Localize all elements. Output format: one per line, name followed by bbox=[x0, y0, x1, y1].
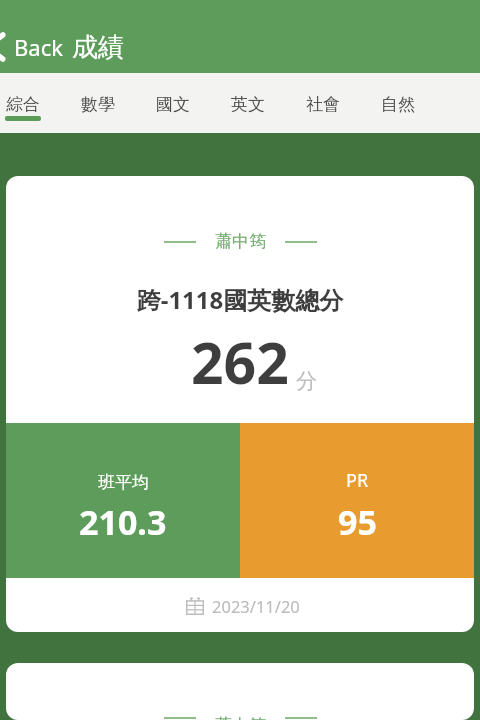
button[interactable]: 自然 bbox=[360, 73, 435, 133]
staticText: Back bbox=[14, 32, 63, 62]
button[interactable]: 綜合 bbox=[0, 73, 60, 133]
button[interactable]: Back bbox=[0, 27, 69, 67]
staticText: 綜合 bbox=[6, 94, 40, 115]
staticText: PR bbox=[346, 468, 369, 493]
button[interactable]: PR bbox=[240, 423, 474, 578]
staticText: 社會 bbox=[306, 94, 340, 115]
staticText: 跨-1118國英數總分 bbox=[6, 283, 474, 316]
staticText: 蕭中筠 bbox=[215, 715, 266, 720]
staticText: 成績 bbox=[72, 31, 124, 64]
staticText: 分 bbox=[296, 368, 317, 394]
staticText: 班平均 bbox=[98, 472, 149, 493]
button[interactable]: 國文 bbox=[135, 73, 210, 133]
staticText: 數學 bbox=[81, 94, 115, 115]
staticText: 自然 bbox=[381, 94, 415, 115]
button[interactable]: 數學 bbox=[60, 73, 135, 133]
button[interactable]: 英文 bbox=[210, 73, 285, 133]
staticText: 262 bbox=[191, 323, 289, 401]
staticText: 英文 bbox=[231, 94, 265, 115]
button[interactable]: 蕭中筠 bbox=[6, 176, 474, 632]
button[interactable]: 蕭中筠 bbox=[6, 663, 474, 720]
staticText: 95 bbox=[338, 499, 377, 545]
staticText: 蕭中筠 bbox=[215, 231, 266, 252]
button[interactable]: 社會 bbox=[285, 73, 360, 133]
button[interactable]: 班平均 bbox=[6, 423, 240, 578]
staticText: 2023/11/20 bbox=[212, 595, 300, 617]
staticText: 210.3 bbox=[79, 499, 167, 545]
staticText: 國文 bbox=[156, 94, 190, 115]
